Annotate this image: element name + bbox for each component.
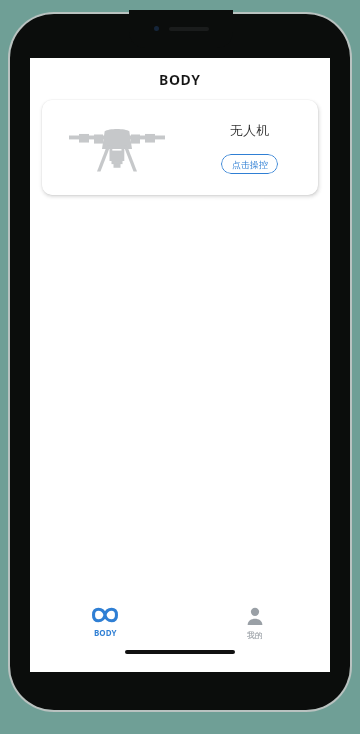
staticText: BODY (159, 70, 201, 89)
button[interactable]: 点击操控 (221, 154, 278, 174)
staticText: 我的 (247, 630, 263, 640)
staticText: BODY (94, 627, 117, 638)
staticText: 点击操控 (232, 159, 268, 170)
staticText: 无人机 (230, 122, 269, 138)
button[interactable]: 我的 (180, 596, 330, 650)
button[interactable]: 无人机 (42, 100, 318, 195)
button[interactable]: BODY (30, 596, 180, 650)
